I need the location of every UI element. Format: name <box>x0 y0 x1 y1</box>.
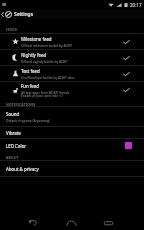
staticText: 20:17 <box>130 2 142 8</box>
button[interactable]: Home <box>54 211 88 230</box>
staticText: Default ringtone (Argonang) <box>6 118 50 122</box>
staticText: FEEDS <box>6 27 18 32</box>
staticText: Fun feed <box>21 83 40 89</box>
button[interactable]: Recent apps <box>91 211 125 230</box>
staticText: LED Color <box>6 143 27 149</box>
staticText: NOTIFICATIONS <box>6 102 36 107</box>
button[interactable]: Test feed <box>0 66 144 81</box>
staticText: Sound <box>6 111 20 117</box>
staticText: Unofficial test builds by AOKP devs <box>21 75 75 79</box>
staticText: Official nightly builds by AOKP <box>21 59 68 63</box>
staticText: Vibrate <box>6 130 21 136</box>
button[interactable]: Vibrate <box>0 127 144 138</box>
button[interactable]: Sound <box>0 107 144 126</box>
button[interactable]: Navigate up <box>0 9 4 19</box>
staticText: Nightly feed <box>21 52 47 58</box>
button[interactable]: Fun feed <box>0 82 144 98</box>
staticText: About & privacy <box>6 166 39 172</box>
button[interactable]: Back <box>16 211 50 230</box>
staticText: Settings <box>14 11 34 18</box>
staticText: ABOUT <box>6 155 19 160</box>
button[interactable]: Milestone feed <box>0 34 144 49</box>
staticText: All test apps from AOKP friends Enable a… <box>21 90 70 98</box>
staticText: Milestone feed <box>21 36 52 42</box>
button[interactable]: Nightly feed <box>0 50 144 65</box>
button[interactable]: About & privacy <box>0 161 144 176</box>
button[interactable]: LED Color <box>0 139 144 152</box>
staticText: Test feed <box>21 68 40 74</box>
staticText: Official milestone builds by AOKP <box>21 43 73 47</box>
